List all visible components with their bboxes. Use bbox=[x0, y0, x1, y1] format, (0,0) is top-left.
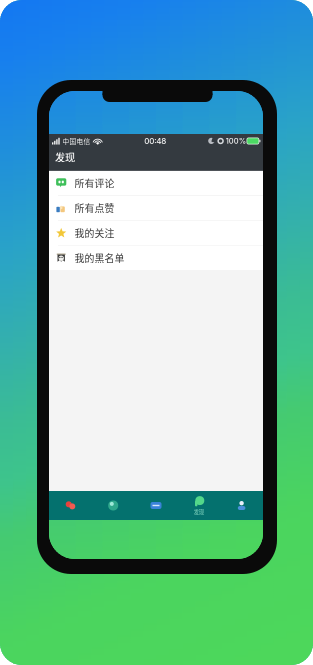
staticText: 发现 bbox=[55, 150, 75, 164]
button[interactable]: 我的关注 bbox=[49, 221, 263, 245]
button[interactable]: Tab bbox=[220, 491, 263, 520]
button[interactable]: 所有评论 bbox=[49, 171, 263, 195]
button[interactable]: Tab bbox=[135, 491, 177, 520]
button[interactable]: 我的黑名单 bbox=[49, 246, 263, 270]
staticText: 所有评论 bbox=[75, 176, 115, 190]
button[interactable]: 所有点赞 bbox=[49, 196, 263, 220]
button[interactable]: Tab bbox=[49, 491, 92, 520]
button[interactable]: 发现 bbox=[177, 491, 220, 520]
button[interactable]: Tab bbox=[92, 491, 135, 520]
staticText: 100% bbox=[226, 136, 246, 145]
staticText: 中国电信 bbox=[62, 136, 90, 146]
staticText: 我的关注 bbox=[75, 226, 115, 240]
staticText: 所有点赞 bbox=[75, 201, 115, 215]
staticText: 00:48 bbox=[144, 136, 166, 146]
staticText: 我的黑名单 bbox=[75, 251, 125, 265]
staticText: 发现 bbox=[194, 508, 204, 516]
